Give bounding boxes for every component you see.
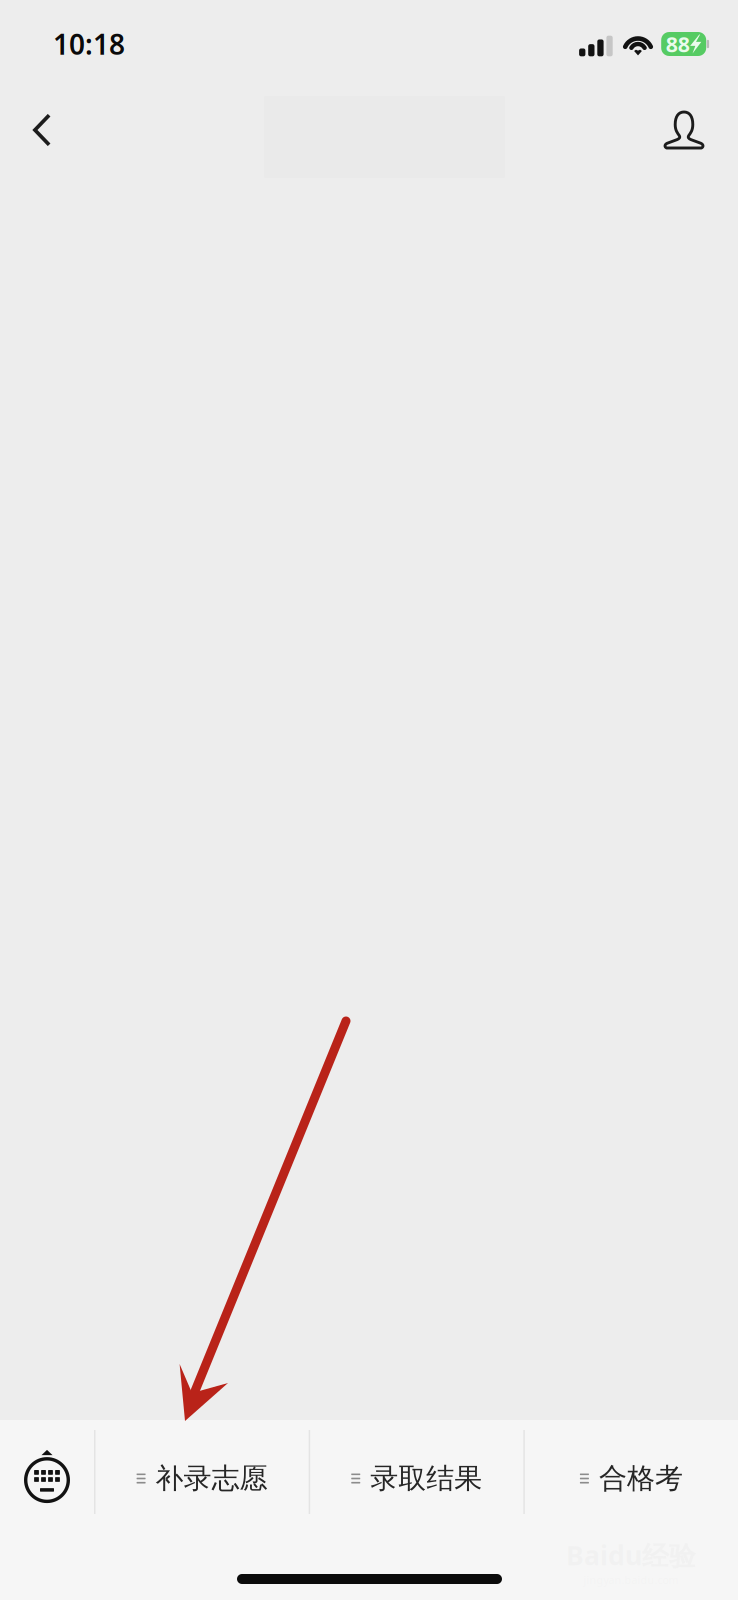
button[interactable]: Keyboard [0,1420,94,1524]
button[interactable]: Profile [645,88,719,174]
button[interactable]: 合格考 [525,1420,738,1524]
button[interactable]: 录取结果 [310,1420,523,1524]
button[interactable]: Back [6,88,80,174]
staticText: 补录志愿 [156,1461,268,1496]
button[interactable]: 补录志愿 [95,1420,309,1524]
staticText: 录取结果 [370,1461,482,1496]
staticText: 合格考 [599,1461,683,1496]
staticText: 10:18 [53,25,125,63]
staticText: 88 [666,30,690,58]
